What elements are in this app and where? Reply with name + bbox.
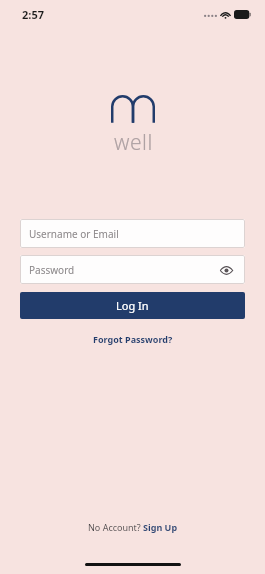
staticText: Log In — [116, 298, 149, 313]
button[interactable]: No Account? Sign Up — [82, 518, 184, 536]
staticText: 2:57 — [22, 7, 44, 22]
button[interactable]: Show password — [216, 260, 236, 280]
staticText: well — [114, 128, 153, 157]
staticText: Username or Email — [29, 227, 119, 241]
staticText: No Account? Sign Up — [88, 521, 178, 533]
button[interactable]: Username or Email — [20, 219, 245, 248]
staticText: Password — [29, 263, 75, 277]
button[interactable]: Forgot Password? — [87, 330, 179, 348]
button[interactable]: Password — [20, 255, 245, 284]
button[interactable]: Log In — [20, 292, 245, 319]
staticText: Forgot Password? — [93, 333, 173, 345]
